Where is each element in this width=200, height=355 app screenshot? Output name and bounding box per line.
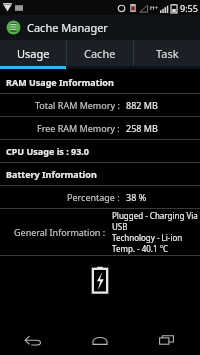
button[interactable]: Total RAM Memory : <box>0 94 200 116</box>
staticText: RAM Usage Information <box>6 76 114 88</box>
staticText: Free RAM Memory : <box>37 122 120 134</box>
staticText: Task <box>156 46 179 61</box>
button[interactable]: RAM Usage Information <box>0 71 200 93</box>
button[interactable]: Battery charging <box>87 262 113 296</box>
staticText: 882 MB <box>126 99 158 111</box>
staticText: Plugged - Charging Via <box>112 210 198 221</box>
staticText: 9:55 <box>180 2 198 14</box>
button[interactable]: Percentage : <box>0 186 200 208</box>
staticText: Cache <box>84 46 116 61</box>
staticText: Percentage : <box>67 191 120 203</box>
staticText: Total RAM Memory : <box>35 99 120 111</box>
button[interactable]: Home <box>66 325 133 355</box>
staticText: Technology - Li-ion <box>112 232 183 243</box>
staticText: General Information : <box>14 226 106 238</box>
button[interactable]: General Information : <box>0 209 200 255</box>
staticText: Temp. - 40.1 °C <box>112 243 169 254</box>
staticText: USB <box>112 221 128 232</box>
staticText: H+ <box>150 4 158 12</box>
button[interactable]: CPU Usage is : 93.0 <box>0 140 200 162</box>
button[interactable]: Cache <box>67 40 133 66</box>
button[interactable]: Back <box>0 325 66 355</box>
button[interactable]: Task <box>134 40 200 66</box>
staticText: Battery Information <box>6 168 97 180</box>
button[interactable]: Recents <box>133 325 200 355</box>
staticText: Cache Manager <box>27 20 108 35</box>
staticText: CPU Usage is : 93.0 <box>6 145 90 157</box>
staticText: Usage <box>17 46 50 61</box>
button[interactable]: Free RAM Memory : <box>0 117 200 139</box>
button[interactable]: Usage <box>0 40 66 66</box>
button[interactable]: Battery Information <box>0 163 200 185</box>
staticText: 258 MB <box>126 122 158 134</box>
staticText: 38 % <box>126 191 147 203</box>
